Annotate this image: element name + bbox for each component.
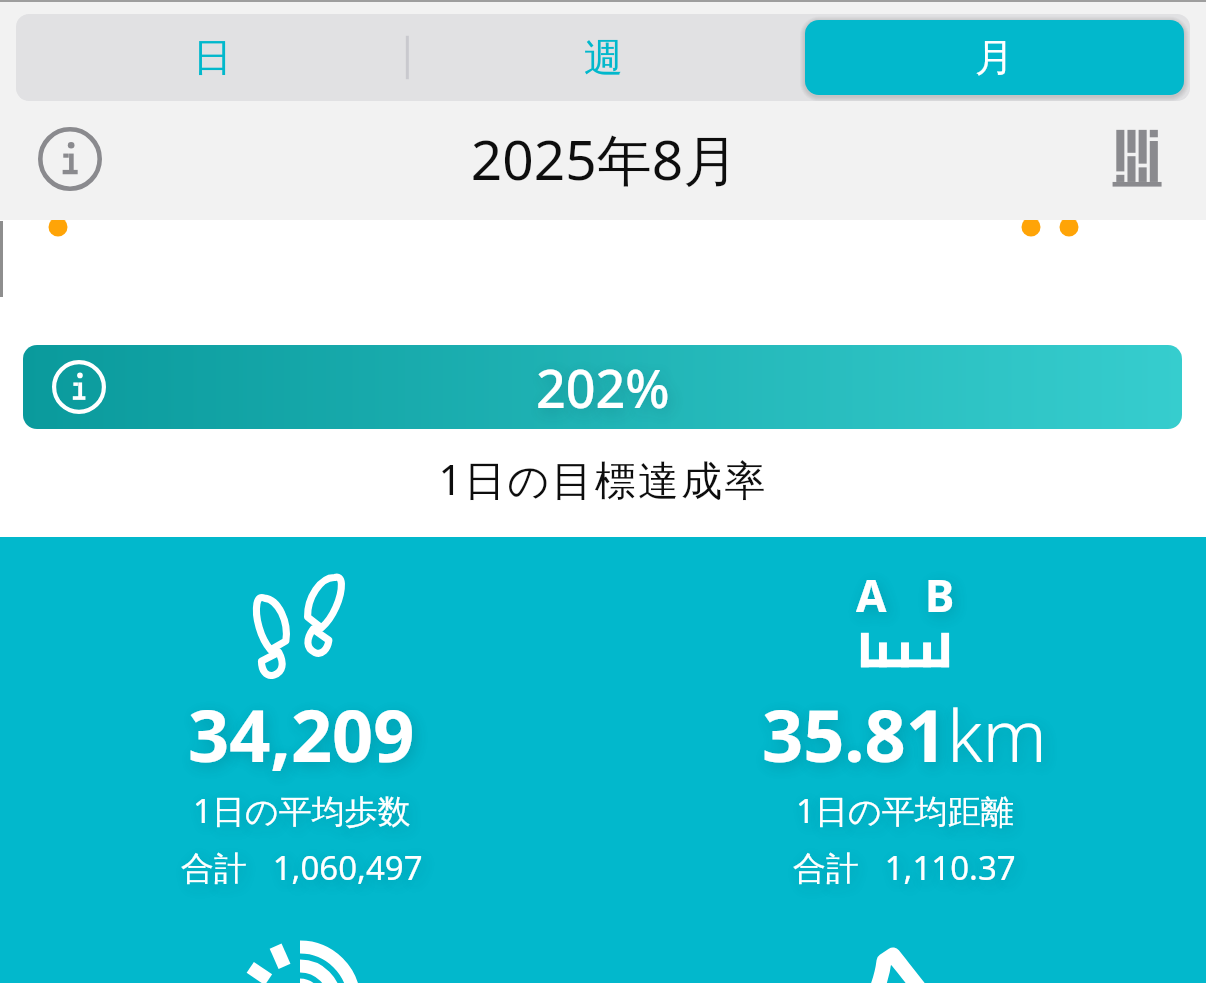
button[interactable]: A bbox=[603, 537, 1206, 983]
staticText: A bbox=[856, 565, 887, 625]
staticText: 202% bbox=[536, 352, 670, 423]
staticText: 週 bbox=[584, 33, 623, 82]
button[interactable]: 月 bbox=[805, 20, 1184, 95]
staticText: 35.81 bbox=[762, 685, 947, 783]
staticText: 1日の目標達成率 bbox=[0, 451, 1206, 507]
staticText: km bbox=[947, 685, 1047, 783]
button[interactable]: 週 bbox=[414, 20, 793, 95]
button[interactable]: Chart bbox=[1107, 128, 1169, 190]
staticText: 1日の平均歩数 bbox=[193, 788, 411, 833]
staticText: 1日の平均距離 bbox=[796, 788, 1014, 833]
button[interactable]: 日 bbox=[22, 20, 402, 95]
staticText: 合計 1,060,497 bbox=[181, 845, 423, 890]
staticText: B bbox=[925, 565, 955, 625]
button[interactable]: 34,209 bbox=[0, 537, 603, 983]
staticText: 34,209 bbox=[188, 685, 415, 783]
button[interactable]: 202% bbox=[23, 345, 1182, 429]
staticText: 合計 1,110.37 bbox=[793, 845, 1016, 890]
button[interactable]: Info bbox=[38, 127, 102, 191]
staticText: 月 bbox=[975, 33, 1014, 82]
staticText: 2025年8月 bbox=[102, 121, 1107, 196]
staticText: 日 bbox=[193, 33, 232, 82]
